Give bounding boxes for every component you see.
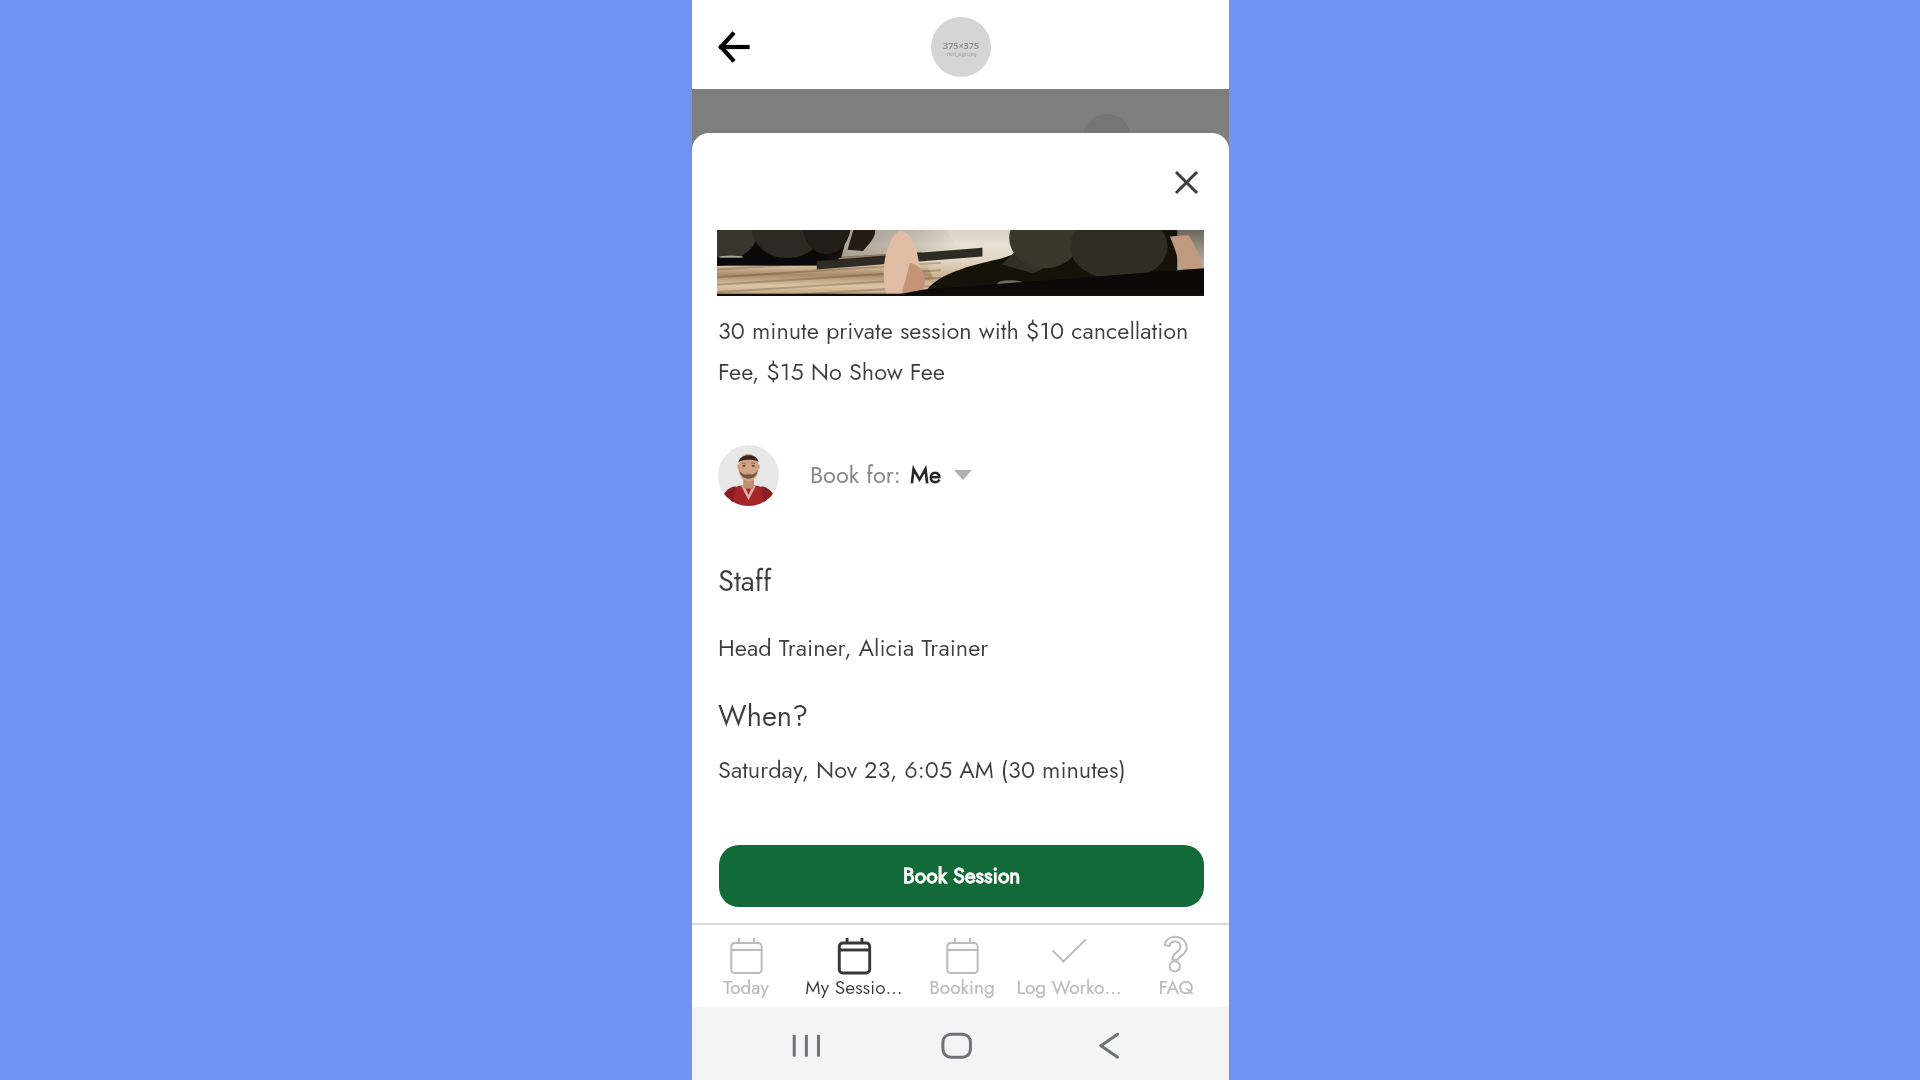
staticText: fwd_sign.jpg — [947, 51, 977, 58]
staticText: Book for: — [810, 458, 901, 492]
button[interactable]: Back — [712, 26, 754, 68]
staticText: When? — [718, 695, 809, 737]
button[interactable]: Close — [1165, 161, 1207, 203]
staticText: Saturday, Nov 23, 6:05 AM (30 minutes) — [718, 753, 1126, 787]
button[interactable]: Book for: — [718, 443, 972, 507]
button[interactable]: Recent apps — [791, 1031, 823, 1063]
button[interactable]: Home — [941, 1031, 973, 1063]
staticText: Booking — [929, 974, 995, 1001]
button[interactable]: Log Worko… — [1015, 929, 1122, 1001]
button[interactable]: Booking — [908, 929, 1015, 1001]
staticText: Me — [910, 458, 942, 492]
staticText: Head Trainer, Alicia Trainer — [718, 631, 989, 665]
staticText: 30 minute private session with $10 cance… — [718, 314, 1200, 389]
staticText: 375×375 — [943, 39, 980, 51]
button[interactable]: Book Session — [719, 845, 1204, 907]
button[interactable]: Back — [1092, 1031, 1124, 1063]
staticText: My Sessio… — [805, 974, 903, 1001]
staticText: Staff — [718, 560, 772, 602]
staticText: Log Worko… — [1016, 974, 1122, 1001]
button[interactable]: My Sessio… — [800, 929, 908, 1001]
button[interactable]: Today — [692, 929, 800, 1001]
staticText: Book Session — [903, 861, 1021, 891]
button[interactable]: FAQ — [1122, 929, 1229, 1001]
staticText: FAQ — [1158, 974, 1194, 1001]
staticText: Today — [723, 974, 769, 1001]
